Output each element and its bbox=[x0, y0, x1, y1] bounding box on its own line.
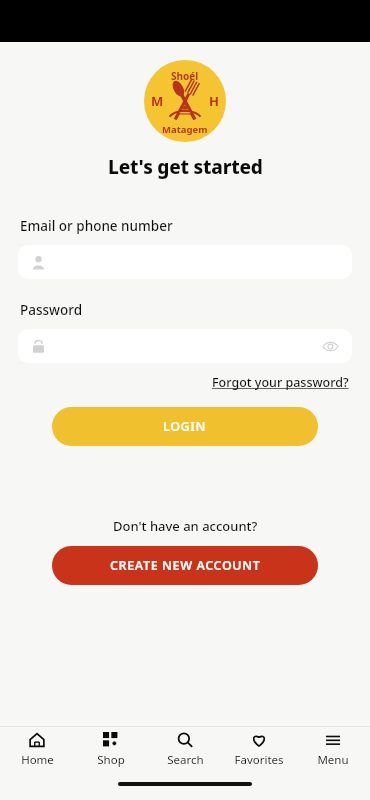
staticText: Shop bbox=[97, 752, 125, 768]
staticText: Let's get started bbox=[108, 154, 263, 180]
button[interactable]: Password input bbox=[18, 329, 352, 363]
button[interactable]: Menu bbox=[296, 727, 370, 773]
staticText: Email or phone number bbox=[20, 217, 173, 235]
button[interactable]: LOGIN bbox=[52, 407, 318, 446]
staticText: Don't have an account? bbox=[113, 517, 258, 535]
button[interactable]: Search bbox=[148, 727, 222, 773]
staticText: Forgot your password? bbox=[212, 374, 349, 391]
staticText: Search bbox=[167, 752, 204, 768]
button[interactable]: Forgot your password? bbox=[210, 372, 351, 393]
button[interactable]: Home bbox=[0, 727, 74, 773]
button[interactable]: Email or phone number input bbox=[18, 245, 352, 279]
staticText: Matagem bbox=[162, 123, 208, 136]
staticText: H bbox=[209, 92, 219, 110]
staticText: LOGIN bbox=[163, 418, 207, 435]
staticText: Home bbox=[21, 752, 54, 768]
button[interactable]: Favorites bbox=[222, 727, 296, 773]
staticText: Favorites bbox=[234, 752, 284, 768]
staticText: Password bbox=[20, 301, 83, 319]
staticText: Shoél bbox=[171, 69, 199, 83]
button[interactable]: CREATE NEW ACCOUNT bbox=[52, 546, 318, 585]
button[interactable]: Shop bbox=[74, 727, 148, 773]
staticText: Menu bbox=[317, 752, 349, 768]
staticText: M bbox=[151, 92, 164, 110]
staticText: CREATE NEW ACCOUNT bbox=[110, 557, 261, 574]
